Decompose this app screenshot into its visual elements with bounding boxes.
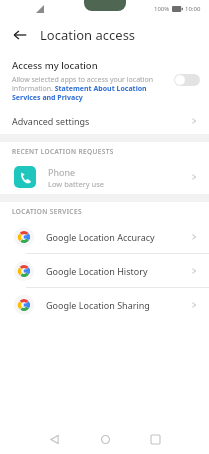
- button[interactable]: Google Location Accuracy: [0, 220, 209, 253]
- staticText: Low battery use: [48, 179, 104, 189]
- staticText: Google Location Accuracy: [46, 231, 155, 243]
- staticText: 100%: [154, 5, 170, 13]
- staticText: Location access: [40, 26, 136, 44]
- button[interactable]: Phone: [0, 160, 209, 194]
- button[interactable]: Access my location toggle: [173, 69, 201, 91]
- button[interactable]: Back: [6, 21, 34, 49]
- staticText: Phone: [48, 166, 76, 178]
- button[interactable]: Home: [95, 429, 115, 449]
- staticText: 10:00: [185, 5, 201, 13]
- button[interactable]: Advanced settings: [0, 108, 209, 134]
- button[interactable]: Access my location: [0, 52, 209, 108]
- staticText: Advanced settings: [12, 115, 90, 127]
- staticText: Google Location History: [46, 265, 148, 277]
- button[interactable]: Back: [44, 429, 64, 449]
- staticText: LOCATION SERVICES: [12, 207, 82, 216]
- button[interactable]: Google Location History: [0, 254, 209, 287]
- button[interactable]: Recents: [145, 429, 165, 449]
- button[interactable]: Google Location Sharing: [0, 288, 209, 321]
- staticText: Allow selected apps to access your locat…: [12, 75, 167, 102]
- staticText: RECENT LOCATION REQUESTS: [12, 147, 114, 156]
- staticText: Access my location: [12, 59, 98, 72]
- staticText: Google Location Sharing: [46, 299, 150, 311]
